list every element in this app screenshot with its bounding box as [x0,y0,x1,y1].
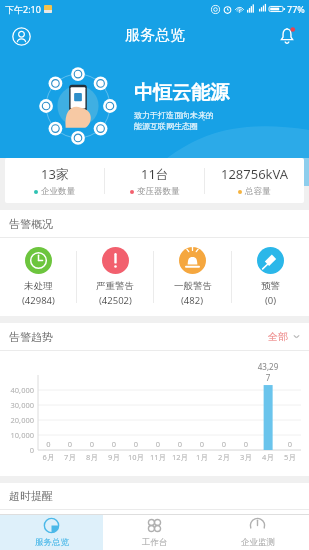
staticText: 中恒云能源 [134,81,229,105]
staticText: 11月 [147,452,169,462]
staticText: 12月 [169,452,191,462]
staticText: 工作台 [142,537,168,548]
staticText: 0 [279,439,301,449]
staticText: 128756kVA [221,165,289,183]
button[interactable]: 未处理 [0,238,76,316]
staticText: 超时提醒 [9,489,53,503]
staticText: 告警概况 [9,217,53,231]
staticText: 0 [81,439,103,449]
staticText: 总容量 [245,186,271,197]
staticText: 20,000 [2,415,34,425]
staticText: 10月 [125,452,147,462]
staticText: 11台 [141,165,169,183]
staticText: 全部 [268,330,288,343]
staticText: 0 [147,439,169,449]
staticText: 0 [59,439,81,449]
button[interactable]: Profile [8,23,34,49]
staticText: 下午2:10 [5,3,41,15]
staticText: 6月 [38,452,59,462]
staticText: 告警趋势 [9,330,53,344]
button[interactable]: 全部 [268,330,301,343]
staticText: 0 [169,439,191,449]
staticText: 致力于打造面向未来的 [134,110,214,120]
staticText: (0) [265,294,277,307]
staticText: 77% [287,3,305,15]
staticText: 1月 [191,452,213,462]
staticText: (42502) [99,294,132,307]
button[interactable]: 企业监测 [206,515,309,550]
staticText: 严重警告 [96,280,134,292]
staticText: 43,297 [257,361,279,383]
staticText: 7月 [59,452,81,462]
button[interactable]: 预警 [232,238,309,316]
staticText: 企业监测 [241,537,275,548]
staticText: 0 [191,439,213,449]
button[interactable]: 13家 [5,158,104,203]
staticText: 预警 [261,280,280,292]
staticText: 13家 [41,165,69,183]
staticText: 8月 [81,452,103,462]
staticText: (42984) [22,294,55,307]
staticText [257,439,279,449]
staticText: 0 [2,445,34,455]
button[interactable]: 服务总览 [0,515,103,550]
staticText: 变压器数量 [137,186,180,197]
staticText: 5月 [279,452,301,462]
staticText: (482) [181,294,204,307]
staticText: 0 [38,439,59,449]
staticText: 0 [125,439,147,449]
staticText: 服务总览 [35,537,69,548]
staticText: 40,000 [2,385,34,395]
button[interactable]: 128756kVA [205,158,304,203]
staticText: 4月 [257,452,279,462]
button[interactable]: Notifications [274,23,300,49]
button[interactable]: 11台 [105,158,204,203]
button[interactable]: 一般警告 [154,238,231,316]
staticText: 3月 [235,452,257,462]
staticText: 未处理 [24,280,53,292]
staticText: 30,000 [2,400,34,410]
staticText: 10,000 [2,430,34,440]
staticText: 服务总览 [125,26,185,45]
staticText: 0 [103,439,125,449]
staticText: 9月 [103,452,125,462]
button[interactable]: 工作台 [103,515,206,550]
staticText: 2月 [213,452,235,462]
staticText: 0 [213,439,235,449]
staticText: 能源互联网生态圈 [134,121,198,131]
button[interactable]: 严重警告 [77,238,153,316]
staticText: 0 [235,439,257,449]
staticText: 企业数量 [41,186,75,197]
staticText: 一般警告 [174,280,212,292]
